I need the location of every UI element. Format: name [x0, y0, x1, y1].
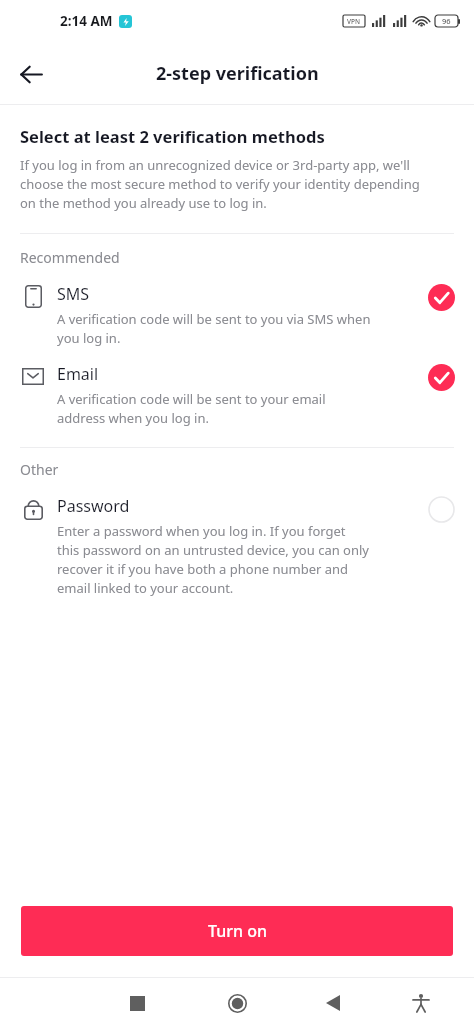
staticText: 2:14 AM: [60, 12, 113, 30]
staticText: 96: [442, 16, 451, 26]
button[interactable]: Select Password: [426, 494, 456, 524]
staticText: A verification code will be sent to your…: [57, 390, 326, 427]
button[interactable]: Back: [10, 53, 52, 95]
button[interactable]: Turn on: [21, 906, 453, 956]
staticText: VPN: [347, 17, 361, 26]
button[interactable]: Selected Email: [426, 362, 456, 392]
button[interactable]: Back: [315, 985, 351, 1021]
button[interactable]: SMS: [0, 281, 474, 347]
staticText: Turn on: [208, 920, 267, 942]
staticText: Select at least 2 verification methods: [20, 125, 325, 147]
staticText: Recommended: [20, 248, 120, 267]
staticText: Enter a password when you log in. If you…: [57, 522, 369, 597]
button[interactable]: Recent apps: [119, 985, 155, 1021]
button[interactable]: Accessibility: [403, 985, 439, 1021]
button[interactable]: Password: [0, 493, 474, 597]
staticText: Other: [20, 460, 59, 479]
staticText: Email: [57, 363, 99, 385]
staticText: SMS: [57, 283, 90, 305]
staticText: Password: [57, 495, 130, 517]
staticText: If you log in from an unrecognized devic…: [20, 156, 420, 212]
staticText: A verification code will be sent to you …: [57, 310, 371, 347]
button[interactable]: Email: [0, 361, 474, 427]
button[interactable]: Selected SMS: [426, 282, 456, 312]
staticText: 2-step verification: [156, 61, 319, 86]
button[interactable]: Home: [219, 985, 255, 1021]
